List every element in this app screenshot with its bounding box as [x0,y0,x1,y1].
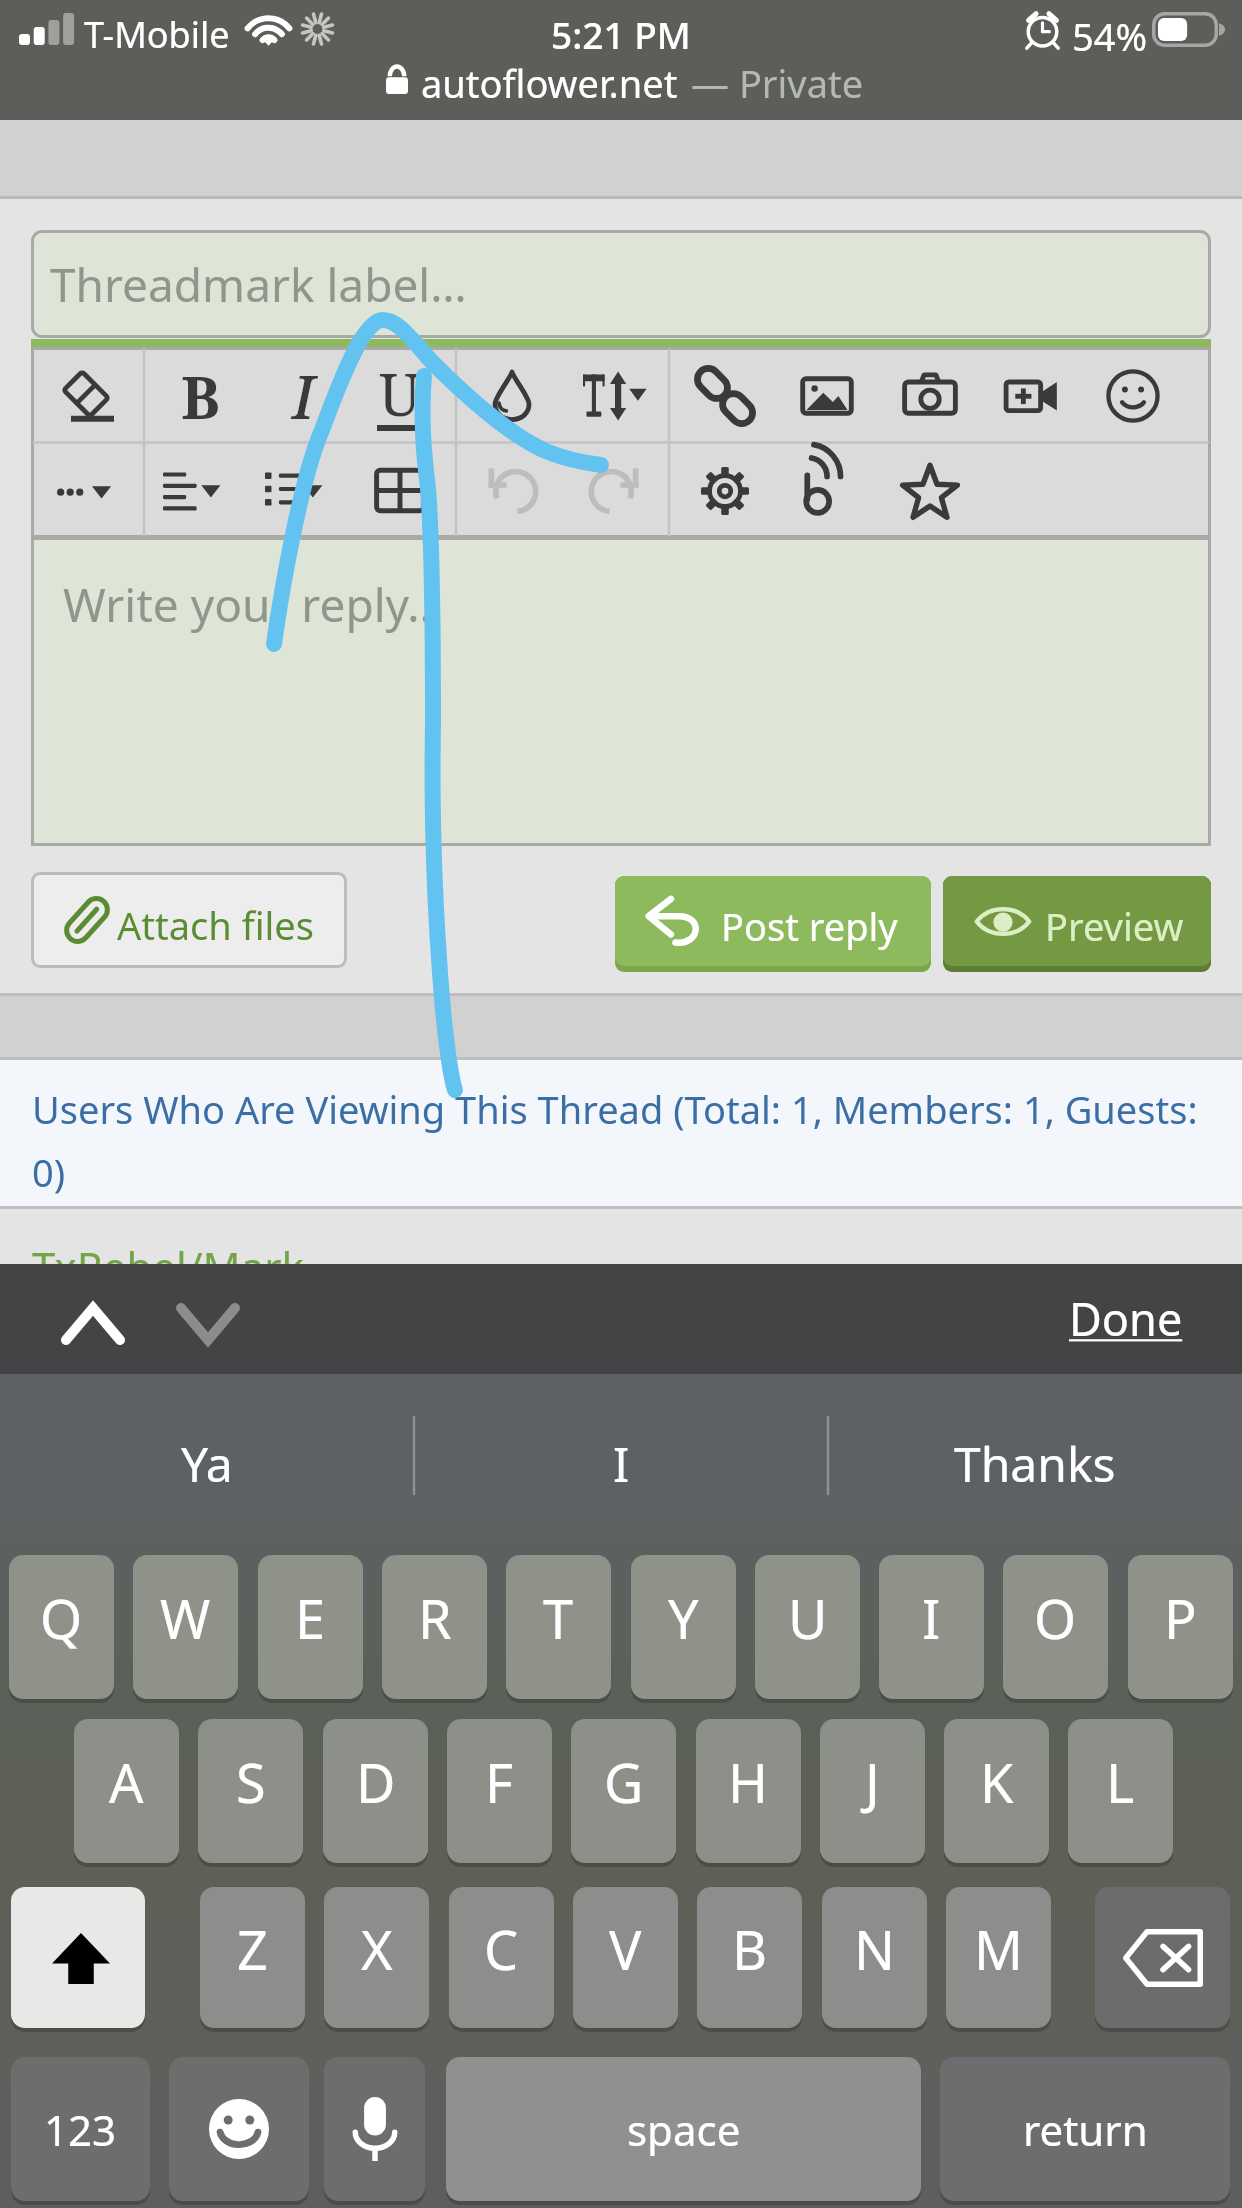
staticText: D [356,1745,396,1819]
staticText: T [543,1581,574,1655]
button[interactable]: Insert video [985,349,1079,443]
button[interactable]: Text colour [465,349,559,443]
staticText: C [484,1912,519,1986]
staticText: G [604,1745,644,1819]
staticText: N [854,1912,896,1986]
button[interactable]: P [1128,1555,1233,1699]
staticText: Thanks [954,1431,1116,1496]
button[interactable]: 123 [11,2057,150,2201]
staticText: Ya [181,1431,233,1496]
button[interactable]: Next field [161,1279,255,1369]
button[interactable]: Take a photo [883,349,977,443]
staticText: T-Mobile [84,10,230,59]
button[interactable]: Users Who Are Viewing This Thread (Total… [0,1060,1242,1206]
button[interactable]: Emoji keyboard [169,2057,309,2201]
button[interactable]: S [198,1719,303,1863]
staticText: U [379,354,421,433]
button[interactable]: L [1068,1719,1173,1863]
staticText: Y [668,1581,699,1655]
button[interactable]: T [506,1555,611,1699]
button[interactable]: K [944,1719,1049,1863]
button[interactable]: V [573,1887,678,2028]
button[interactable]: Preview [943,876,1211,966]
button[interactable]: Q [9,1555,114,1699]
staticText: TxRebel/Mark [32,1238,304,1295]
staticText: I [292,355,315,437]
button[interactable]: Underline [353,349,447,443]
button[interactable]: Font size [566,349,660,443]
staticText: R [418,1581,452,1655]
staticText: I [613,1431,630,1496]
button[interactable]: X [324,1887,429,2028]
staticText: — Private [691,57,864,109]
button[interactable]: Insert link [678,349,772,443]
staticText: space [627,2101,741,2158]
staticText: H [728,1745,769,1819]
button[interactable]: E [258,1555,363,1699]
button[interactable]: J [820,1719,925,1863]
button[interactable]: W [133,1555,238,1699]
button[interactable]: Redo [567,444,661,538]
button[interactable]: Thanks [828,1374,1242,1552]
button[interactable]: Bookmark [883,444,977,538]
button[interactable]: N [822,1887,927,2028]
staticText: 123 [44,2101,117,2158]
button[interactable]: Text alignment [145,444,239,538]
button[interactable]: More options [38,444,132,538]
button[interactable]: M [946,1887,1051,2028]
staticText: U [788,1581,828,1655]
button[interactable]: Lists [247,444,341,538]
staticText: B [181,357,220,436]
button[interactable]: Undo [466,444,560,538]
button[interactable]: Threadmark label… [31,230,1211,338]
button[interactable]: Insert emoji [1086,349,1180,443]
button[interactable]: R [382,1555,487,1699]
button[interactable]: H [696,1719,801,1863]
staticText: L [1106,1745,1135,1819]
button[interactable]: space [446,2057,921,2201]
button[interactable]: C [449,1887,554,2028]
button[interactable]: A [74,1719,179,1863]
button[interactable]: Post reply [615,876,931,966]
staticText: Threadmark label… [50,253,467,316]
staticText: M [974,1912,1023,1986]
staticText: return [1023,2101,1148,2158]
button[interactable]: Insert table [353,444,447,538]
button[interactable]: B [697,1887,802,2028]
button[interactable]: Shift [11,1887,145,2028]
button[interactable]: Remove formatting [41,349,135,443]
staticText: A [109,1745,144,1819]
button[interactable]: O [1003,1555,1108,1699]
staticText: X [361,1912,393,1986]
button[interactable]: Bold [153,349,247,443]
staticText: Users Who Are Viewing This Thread (Total… [32,1083,1207,1198]
button[interactable]: U [755,1555,860,1699]
button[interactable]: Write your reply.. [31,537,1211,846]
staticText: Preview [1045,900,1184,952]
button[interactable]: Attach files [31,872,347,968]
button[interactable]: return [940,2057,1230,2201]
button[interactable]: Backspace [1095,1887,1230,2028]
staticText: P [1164,1581,1197,1655]
staticText: J [865,1745,880,1819]
button[interactable]: F [447,1719,552,1863]
button[interactable]: Insert image [780,349,874,443]
button[interactable]: G [571,1719,676,1863]
staticText: E [295,1581,326,1655]
button[interactable]: Y [631,1555,736,1699]
staticText: W [160,1581,211,1655]
button[interactable]: Dictation [324,2057,425,2201]
staticText: 54% [1072,10,1148,62]
button[interactable]: Insert media [779,444,873,538]
button[interactable]: Previous field [46,1279,140,1369]
button[interactable]: D [323,1719,428,1863]
button[interactable]: Z [200,1887,305,2028]
button[interactable]: Italic [256,349,350,443]
button[interactable]: Editor options [678,444,772,538]
staticText: Post reply [721,900,898,952]
staticText: Z [237,1912,268,1986]
button[interactable]: Ya [0,1374,414,1552]
button[interactable]: I [414,1374,828,1552]
button[interactable]: Done [1055,1264,1242,1325]
button[interactable]: I [879,1555,984,1699]
